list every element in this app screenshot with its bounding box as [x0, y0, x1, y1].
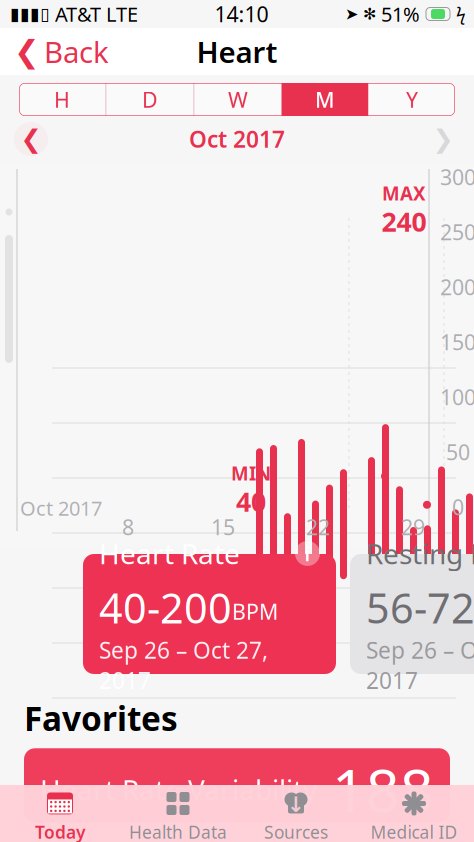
staticText: AT&T	[55, 1, 101, 27]
staticText: ❮	[14, 34, 40, 69]
staticText: Oct 2017	[20, 495, 102, 521]
staticText: 56-72	[366, 580, 474, 635]
staticText: 240	[381, 204, 426, 239]
button[interactable]: Heart Rate	[83, 554, 336, 674]
staticText: 40-200	[99, 580, 232, 635]
button[interactable]: Previous month	[9, 122, 53, 156]
button[interactable]: H	[18, 83, 105, 116]
staticText: Y	[406, 85, 418, 114]
staticText: 250	[440, 218, 474, 246]
staticText: Today	[35, 820, 85, 842]
staticText: 14:10	[214, 0, 268, 28]
staticText: 40	[236, 484, 266, 519]
staticText: 8	[122, 513, 134, 541]
staticText: 200	[440, 273, 474, 301]
staticText: 15	[211, 513, 235, 541]
staticText: W	[228, 85, 248, 114]
staticText: ❯	[432, 125, 453, 153]
staticText: ϟ	[456, 2, 466, 25]
button[interactable]: Medical ID	[355, 785, 473, 842]
staticText: BPM	[232, 597, 278, 626]
button[interactable]: ↓	[237, 785, 355, 842]
button[interactable]: Y	[368, 83, 455, 116]
staticText: i	[304, 540, 310, 567]
staticText: M	[315, 85, 335, 114]
staticText: 50	[446, 438, 470, 466]
button[interactable]: Heart Rate Variability	[24, 748, 450, 822]
button[interactable]: M	[281, 83, 368, 116]
staticText: Sources	[264, 820, 328, 842]
staticText: Heart	[196, 32, 277, 71]
staticText: Back	[44, 32, 109, 71]
staticText: MIN	[231, 461, 271, 486]
button[interactable]: ❮	[0, 26, 109, 77]
staticText: ▮▮▮▯	[10, 4, 50, 24]
button[interactable]: Next month	[421, 122, 465, 156]
staticText: Medical ID	[370, 820, 457, 842]
staticText: Heart Rate	[99, 535, 240, 572]
staticText: 300	[440, 163, 474, 191]
button[interactable]: W	[194, 83, 281, 116]
staticText: 22	[306, 513, 330, 541]
staticText: H	[54, 85, 70, 114]
staticText: Health Data	[129, 820, 227, 842]
staticText: LTE	[106, 1, 138, 27]
button[interactable]: Today	[1, 785, 119, 842]
staticText: Heart Rate Variability	[40, 771, 317, 808]
staticText: Sep 26 – Oct 27, 2017	[99, 635, 268, 695]
staticText: Favorites	[24, 696, 178, 740]
staticText: 0	[452, 493, 464, 521]
staticText: ❮	[20, 125, 41, 153]
staticText: 100	[440, 383, 474, 411]
staticText: Oct 2017	[189, 124, 285, 154]
button[interactable]: Resting Rate	[350, 554, 474, 674]
staticText: ✻	[363, 5, 376, 23]
staticText: Resting Rate	[366, 535, 474, 572]
staticText: ↓	[287, 792, 305, 817]
button[interactable]: Health Data	[119, 785, 237, 842]
staticText: 188	[332, 750, 434, 828]
staticText: 51%	[381, 1, 420, 27]
staticText: ➤	[345, 5, 358, 23]
staticText: 29	[401, 513, 425, 541]
staticText: 150	[440, 328, 474, 356]
staticText: Sep 26 – Oct 27, 2017	[366, 635, 474, 695]
staticText: MAX	[382, 181, 426, 206]
button[interactable]: D	[106, 83, 193, 116]
staticText: D	[142, 85, 158, 114]
